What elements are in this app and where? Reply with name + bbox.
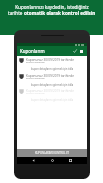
button[interactable]: Ana Sayfa <box>51 159 54 162</box>
staticText: Kuponunuz 30/09/2019 tarihinde <box>26 74 74 78</box>
staticText: kupon detaylarını görmek için tıkla <box>31 67 74 71</box>
staticText: Kuponunuz 30/09/2019 tarihinde <box>26 58 74 62</box>
staticText: kontrol edilecek <box>26 76 45 79</box>
button[interactable]: Geri <box>32 159 35 162</box>
staticText: Kuponlarınızı kaydedin, istediğiniz <box>15 4 89 10</box>
button[interactable]: KUPONLARIMI KONTROL ET <box>17 149 87 157</box>
button[interactable]: Kuponunuz 30/09/2019 tarihinde <box>17 88 87 104</box>
staticText: kontrol edilecek <box>26 60 45 63</box>
staticText: Kuponunuz 30/09/2019 tarihinde <box>26 89 74 93</box>
staticText: kontrol edilecek <box>26 91 45 94</box>
button[interactable]: Son Kullanılanlar <box>69 159 72 162</box>
staticText: otomatik olarak kontrol edilsin <box>24 10 96 16</box>
staticText: KUPONLARIMI KONTROL ET <box>35 151 70 155</box>
button[interactable]: Kuponunuz 30/09/2019 tarihinde <box>17 73 87 89</box>
staticText: tarihte <box>8 10 24 16</box>
staticText: kupon detaylarını görmek için tıkla <box>31 98 74 102</box>
button[interactable]: Onayla <box>73 49 77 53</box>
button[interactable]: Kuponunuz 30/09/2019 tarihinde <box>17 57 87 73</box>
staticText: Kuponlarım <box>20 48 45 54</box>
staticText: kupon detaylarını görmek için tıkla <box>31 83 74 87</box>
